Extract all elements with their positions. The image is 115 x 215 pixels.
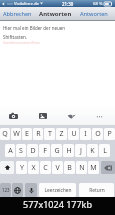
button[interactable]: G xyxy=(51,144,62,157)
other: Shift xyxy=(4,164,11,171)
button[interactable]: Y xyxy=(16,161,27,174)
button[interactable]: N xyxy=(76,161,87,174)
button[interactable]: Return xyxy=(79,183,114,197)
button[interactable]: M xyxy=(88,161,99,174)
staticText: T xyxy=(48,129,52,139)
staticText: Y xyxy=(20,163,24,173)
button[interactable]: H xyxy=(63,144,74,157)
staticText: Hier mal ein Bilder der neuen xyxy=(3,25,66,31)
staticText: J xyxy=(80,146,82,156)
button[interactable]: Dictate xyxy=(25,183,37,197)
button[interactable]: Abbrechen xyxy=(2,8,33,20)
button[interactable]: C xyxy=(40,161,51,174)
button[interactable]: X xyxy=(28,161,39,174)
staticText: Return xyxy=(89,187,105,194)
staticText: Z xyxy=(59,129,64,139)
staticText: O xyxy=(95,129,101,139)
staticText: N xyxy=(79,163,85,173)
staticText: S xyxy=(19,146,23,156)
button[interactable]: K xyxy=(87,144,98,157)
staticText: Q xyxy=(2,129,8,139)
button[interactable]: 123 xyxy=(0,183,11,197)
staticText: A xyxy=(8,146,13,156)
button[interactable]: Q xyxy=(0,128,10,140)
button[interactable]: I xyxy=(80,128,91,140)
button[interactable]: S xyxy=(16,144,26,157)
staticText: 21:30 xyxy=(62,1,74,7)
staticText: Vodafone.de xyxy=(14,1,39,7)
button[interactable]: J xyxy=(75,144,86,157)
staticText: M xyxy=(90,163,97,173)
staticText: C xyxy=(43,163,48,173)
button[interactable]: Antworten xyxy=(79,8,109,20)
other: Delete xyxy=(104,164,112,172)
button[interactable]: D xyxy=(27,144,38,157)
staticText: D xyxy=(30,146,36,156)
staticText: Abbrechen xyxy=(3,10,32,18)
staticText: K xyxy=(90,146,95,156)
button[interactable]: W xyxy=(11,128,21,140)
staticText: H xyxy=(66,146,72,156)
staticText: Gesendet von meinem iPhone xyxy=(3,41,40,45)
button[interactable]: E xyxy=(22,128,32,140)
staticText: W xyxy=(13,129,20,139)
staticText: 68 % xyxy=(93,1,103,7)
button[interactable]: Next keyboard xyxy=(12,183,23,197)
button[interactable]: Shift xyxy=(0,161,14,174)
staticText: U xyxy=(71,129,77,139)
button[interactable]: R xyxy=(33,128,43,140)
button[interactable]: Z xyxy=(56,128,67,140)
staticText: F xyxy=(43,146,47,156)
staticText: L xyxy=(103,146,107,156)
staticText: X xyxy=(31,163,36,173)
button[interactable]: A xyxy=(5,144,15,157)
button[interactable]: Photo library xyxy=(36,109,50,123)
staticText: R xyxy=(36,129,41,139)
staticText: Shifttasten. xyxy=(3,34,28,40)
staticText: Antworten xyxy=(39,10,72,18)
button[interactable]: O xyxy=(92,128,103,140)
button[interactable]: Markup xyxy=(64,109,78,123)
staticText: B xyxy=(67,163,72,173)
button[interactable]: Leerzeichen xyxy=(39,183,76,197)
button[interactable]: V xyxy=(52,161,63,174)
staticText: I xyxy=(84,129,87,139)
staticText: 577x1024 177kb xyxy=(23,198,92,210)
button[interactable]: Delete xyxy=(101,161,115,174)
other: Dictate xyxy=(28,187,35,194)
staticText: Leerzeichen xyxy=(44,187,72,194)
staticText: E xyxy=(25,129,29,139)
button[interactable]: U xyxy=(68,128,79,140)
staticText: Antworten xyxy=(80,10,108,18)
other: Next keyboard xyxy=(14,187,21,194)
button[interactable]: P xyxy=(104,128,115,140)
staticText: V xyxy=(55,163,60,173)
button[interactable]: More options xyxy=(92,109,106,123)
button[interactable]: B xyxy=(64,161,75,174)
button[interactable]: L xyxy=(99,144,110,157)
staticText: P xyxy=(107,129,112,139)
staticText: 123 xyxy=(2,187,10,193)
staticText: G xyxy=(54,146,60,156)
button[interactable]: F xyxy=(39,144,50,157)
button[interactable]: Take photo xyxy=(6,109,20,123)
button[interactable]: T xyxy=(44,128,55,140)
